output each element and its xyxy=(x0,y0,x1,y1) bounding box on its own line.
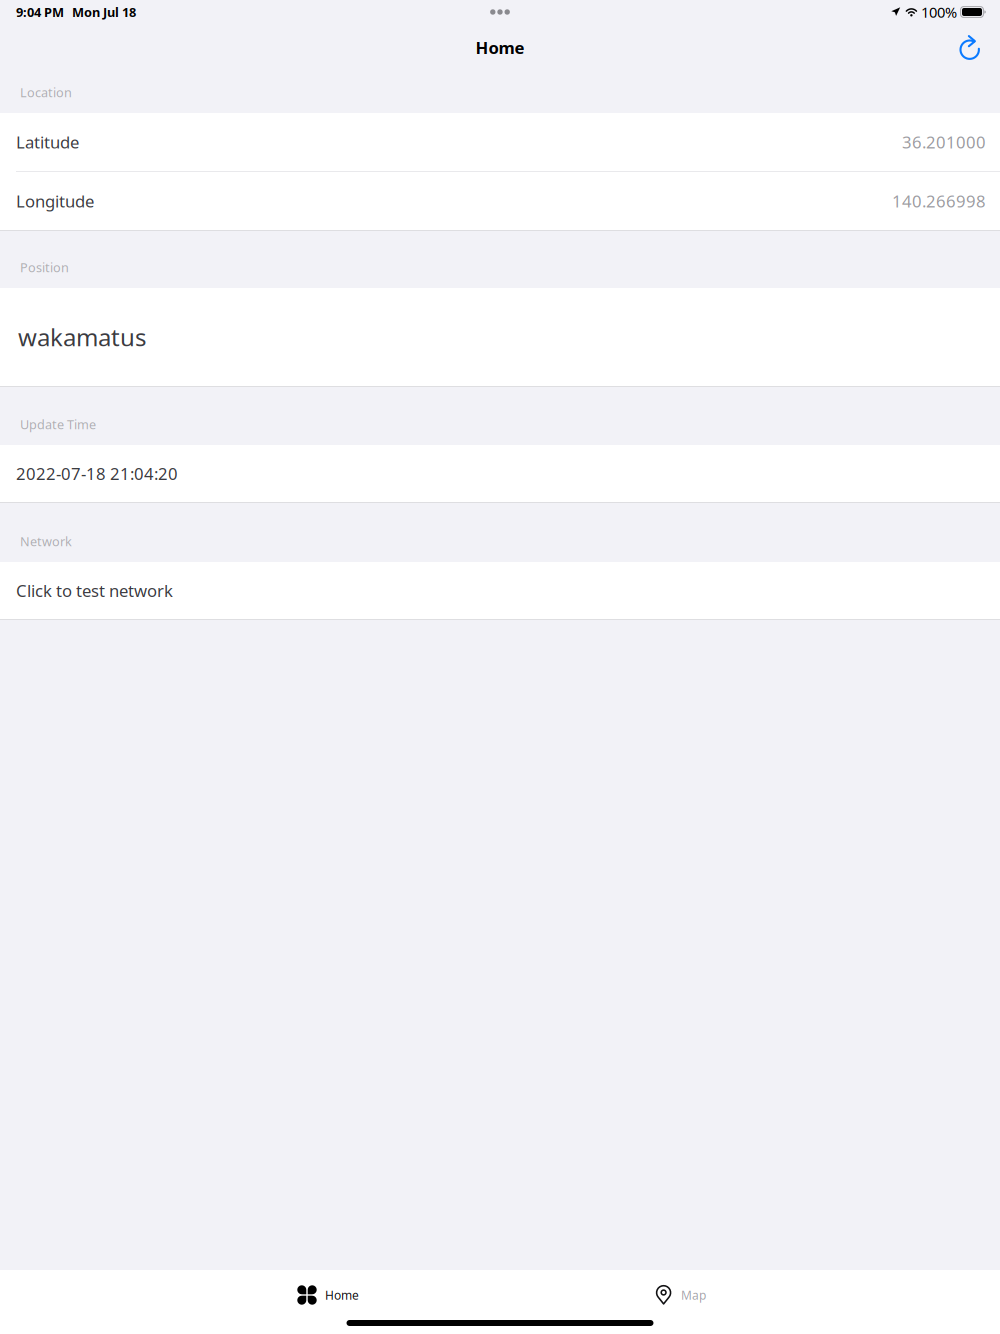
staticText: wakamatus xyxy=(18,321,146,353)
staticText: 9:04 PM xyxy=(16,3,64,21)
staticText: Click to test network xyxy=(16,579,173,602)
staticText: Location xyxy=(20,84,72,101)
staticText: Longitude xyxy=(16,190,94,212)
staticText: Map xyxy=(681,1287,706,1303)
staticText: 2022-07-18 21:04:20 xyxy=(16,462,178,485)
button[interactable]: Click to test network xyxy=(0,562,1000,619)
staticText: 100% xyxy=(921,2,957,22)
staticText: Position xyxy=(20,259,69,276)
button[interactable]: Home xyxy=(297,1278,359,1312)
staticText: Network xyxy=(20,533,72,550)
button[interactable]: Map xyxy=(655,1278,706,1312)
staticText: 36.201000 xyxy=(902,131,986,153)
staticText: 140.266998 xyxy=(892,190,986,212)
staticText: Home xyxy=(475,36,524,59)
staticText: Mon Jul 18 xyxy=(72,3,136,21)
button[interactable]: Refresh xyxy=(949,27,991,67)
staticText: Update Time xyxy=(20,416,96,433)
staticText: Latitude xyxy=(16,131,79,153)
staticText: Home xyxy=(325,1287,359,1303)
